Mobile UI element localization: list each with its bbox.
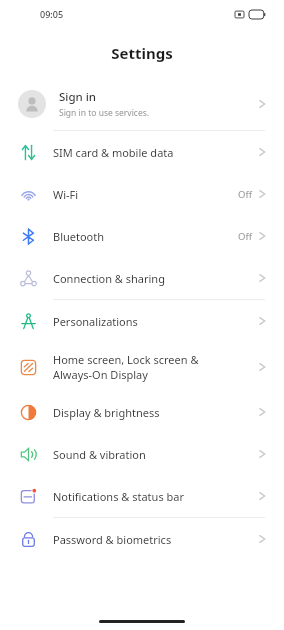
staticText: Bluetooth bbox=[53, 229, 238, 244]
button[interactable]: Sign in bbox=[0, 78, 284, 130]
staticText: Sound & vibration bbox=[53, 447, 259, 462]
staticText: Personalizations bbox=[53, 314, 259, 329]
staticText: Display & brightness bbox=[53, 405, 259, 420]
button[interactable]: Sound & vibration bbox=[0, 433, 284, 475]
staticText: Sign in to use services. bbox=[59, 107, 150, 119]
button[interactable]: Display & brightness bbox=[0, 391, 284, 433]
button[interactable]: Password & biometrics bbox=[0, 518, 284, 560]
staticText: Notifications & status bar bbox=[53, 489, 259, 504]
staticText: 09:05 bbox=[40, 8, 64, 20]
staticText: Wi-Fi bbox=[53, 187, 238, 202]
staticText: Password & biometrics bbox=[53, 532, 259, 547]
button[interactable]: Notifications & status bar bbox=[0, 475, 284, 517]
button[interactable]: Personalizations bbox=[0, 300, 284, 342]
staticText: Off bbox=[238, 188, 252, 201]
staticText: SIM card & mobile data bbox=[53, 145, 259, 160]
button[interactable]: Wi-Fi bbox=[0, 173, 284, 215]
staticText: Connection & sharing bbox=[53, 271, 259, 286]
button[interactable]: Home screen, Lock screen & Always-On Dis… bbox=[0, 342, 284, 391]
button[interactable]: SIM card & mobile data bbox=[0, 131, 284, 173]
staticText: Off bbox=[238, 230, 252, 243]
button[interactable]: Bluetooth bbox=[0, 215, 284, 257]
staticText: Settings bbox=[111, 43, 173, 63]
staticText: Home screen, Lock screen & Always-On Dis… bbox=[53, 352, 259, 382]
button[interactable]: Connection & sharing bbox=[0, 257, 284, 299]
staticText: Sign in bbox=[59, 89, 97, 105]
